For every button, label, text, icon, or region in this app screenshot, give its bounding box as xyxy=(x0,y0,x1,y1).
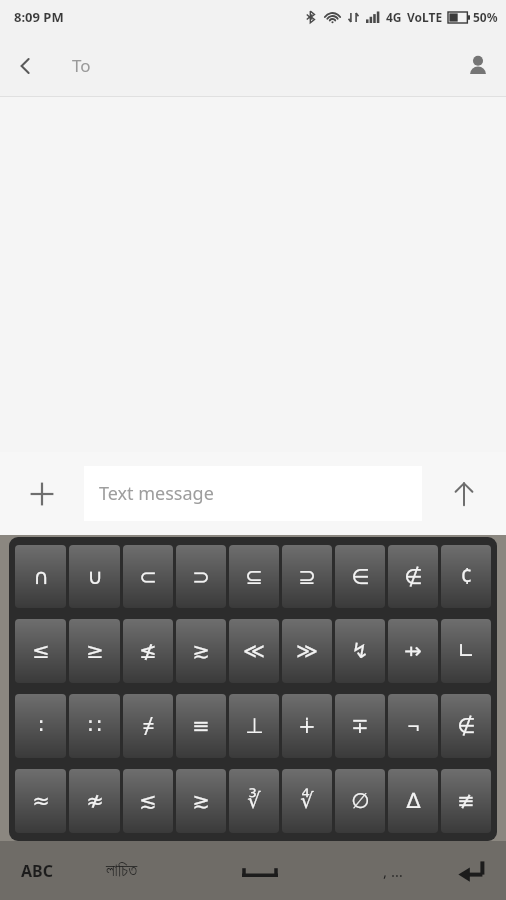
button[interactable]: ≳ xyxy=(176,619,226,683)
staticText: ∔ xyxy=(298,714,316,738)
button[interactable]: ⇸ xyxy=(388,619,438,683)
staticText: , … xyxy=(383,861,403,881)
button[interactable]: ∪ xyxy=(69,545,120,608)
button[interactable]: Contacts xyxy=(450,38,506,94)
staticText: ∈ xyxy=(351,565,370,589)
button[interactable]: ∉ xyxy=(441,694,491,758)
staticText: 4G xyxy=(386,9,402,25)
button[interactable]: ≡ xyxy=(176,694,226,758)
staticText: ∪ xyxy=(87,565,103,589)
staticText: ∅ xyxy=(351,789,370,813)
staticText: 50% xyxy=(473,9,498,25)
staticText: ∛ xyxy=(247,789,261,813)
button[interactable]: ≠ xyxy=(123,694,173,758)
button[interactable]: ≲ xyxy=(123,769,173,833)
button[interactable]: ≫ xyxy=(282,619,332,683)
staticText: VoLTE xyxy=(407,9,443,25)
staticText: ↯ xyxy=(351,639,369,663)
button[interactable]: ≉ xyxy=(69,769,120,833)
staticText: ⊇ xyxy=(298,565,316,589)
staticText: ⊃ xyxy=(192,565,210,589)
button[interactable]: ≥ xyxy=(69,619,120,683)
staticText: ≈ xyxy=(32,789,50,813)
button[interactable]: Add attachment xyxy=(0,452,84,535)
button[interactable]: Send xyxy=(422,452,506,535)
button[interactable]: ∛ xyxy=(229,769,279,833)
staticText: লাচিত xyxy=(106,862,138,879)
staticText: To xyxy=(72,54,91,77)
button[interactable]: ∆ xyxy=(388,769,438,833)
button[interactable]: ∷ xyxy=(69,694,120,758)
button[interactable]: ∉ xyxy=(388,545,438,608)
staticText: ¬ xyxy=(407,712,420,741)
staticText: ∶ xyxy=(38,714,44,738)
button[interactable]: লাচিত xyxy=(74,841,169,900)
button[interactable]: ⊃ xyxy=(176,545,226,608)
staticText: ≢ xyxy=(457,789,475,813)
staticText: ¢ xyxy=(460,562,473,591)
staticText: ≳ xyxy=(192,639,210,663)
button[interactable]: ∩ xyxy=(15,545,66,608)
staticText: ≉ xyxy=(86,789,104,813)
staticText: ∉ xyxy=(404,565,423,589)
button[interactable]: Enter xyxy=(436,841,506,900)
staticText: ∩ xyxy=(33,565,49,589)
button[interactable]: ∓ xyxy=(335,694,385,758)
button[interactable]: ∜ xyxy=(282,769,332,833)
button[interactable]: Back xyxy=(0,40,52,92)
staticText: ⊆ xyxy=(245,565,263,589)
staticText: ≰ xyxy=(139,639,157,663)
button[interactable]: ⊂ xyxy=(123,545,173,608)
button[interactable]: ABC xyxy=(0,841,74,900)
staticText: 8:09 PM xyxy=(14,8,64,26)
button[interactable]: ≰ xyxy=(123,619,173,683)
button[interactable]: ↯ xyxy=(335,619,385,683)
button[interactable]: ≳ xyxy=(176,769,226,833)
button[interactable]: ∶ xyxy=(15,694,66,758)
staticText: ∓ xyxy=(351,714,369,738)
staticText: Text message xyxy=(99,481,214,506)
staticText: ∷ xyxy=(88,714,102,738)
staticText: ∉ xyxy=(457,714,476,738)
button[interactable]: ≪ xyxy=(229,619,279,683)
staticText: ≤ xyxy=(32,639,50,663)
staticText: ∟ xyxy=(457,639,475,663)
staticText: ≫ xyxy=(296,639,318,663)
button[interactable]: ¬ xyxy=(388,694,438,758)
button[interactable]: ⊇ xyxy=(282,545,332,608)
button[interactable]: Space xyxy=(169,841,350,900)
staticText: ⊥ xyxy=(245,714,264,738)
staticText: ≠ xyxy=(142,712,155,741)
staticText: ⇸ xyxy=(404,639,422,663)
staticText: ∜ xyxy=(300,789,314,813)
button[interactable]: ¢ xyxy=(441,545,491,608)
button[interactable]: ≢ xyxy=(441,769,491,833)
button[interactable]: ⊥ xyxy=(229,694,279,758)
staticText: ≪ xyxy=(243,639,265,663)
staticText: ABC xyxy=(21,860,53,882)
button[interactable]: ∈ xyxy=(335,545,385,608)
staticText: ≡ xyxy=(192,714,210,738)
button[interactable]: ≈ xyxy=(15,769,66,833)
staticText: ⊂ xyxy=(139,565,157,589)
button[interactable]: ≤ xyxy=(15,619,66,683)
button[interactable]: ∟ xyxy=(441,619,491,683)
button[interactable]: ∔ xyxy=(282,694,332,758)
button[interactable]: ∅ xyxy=(335,769,385,833)
staticText: ≥ xyxy=(86,639,104,663)
button[interactable]: ⊆ xyxy=(229,545,279,608)
staticText: ≲ xyxy=(139,789,157,813)
button[interactable]: Text message xyxy=(84,466,422,521)
staticText: ∆ xyxy=(406,789,421,813)
staticText: ≳ xyxy=(192,789,210,813)
